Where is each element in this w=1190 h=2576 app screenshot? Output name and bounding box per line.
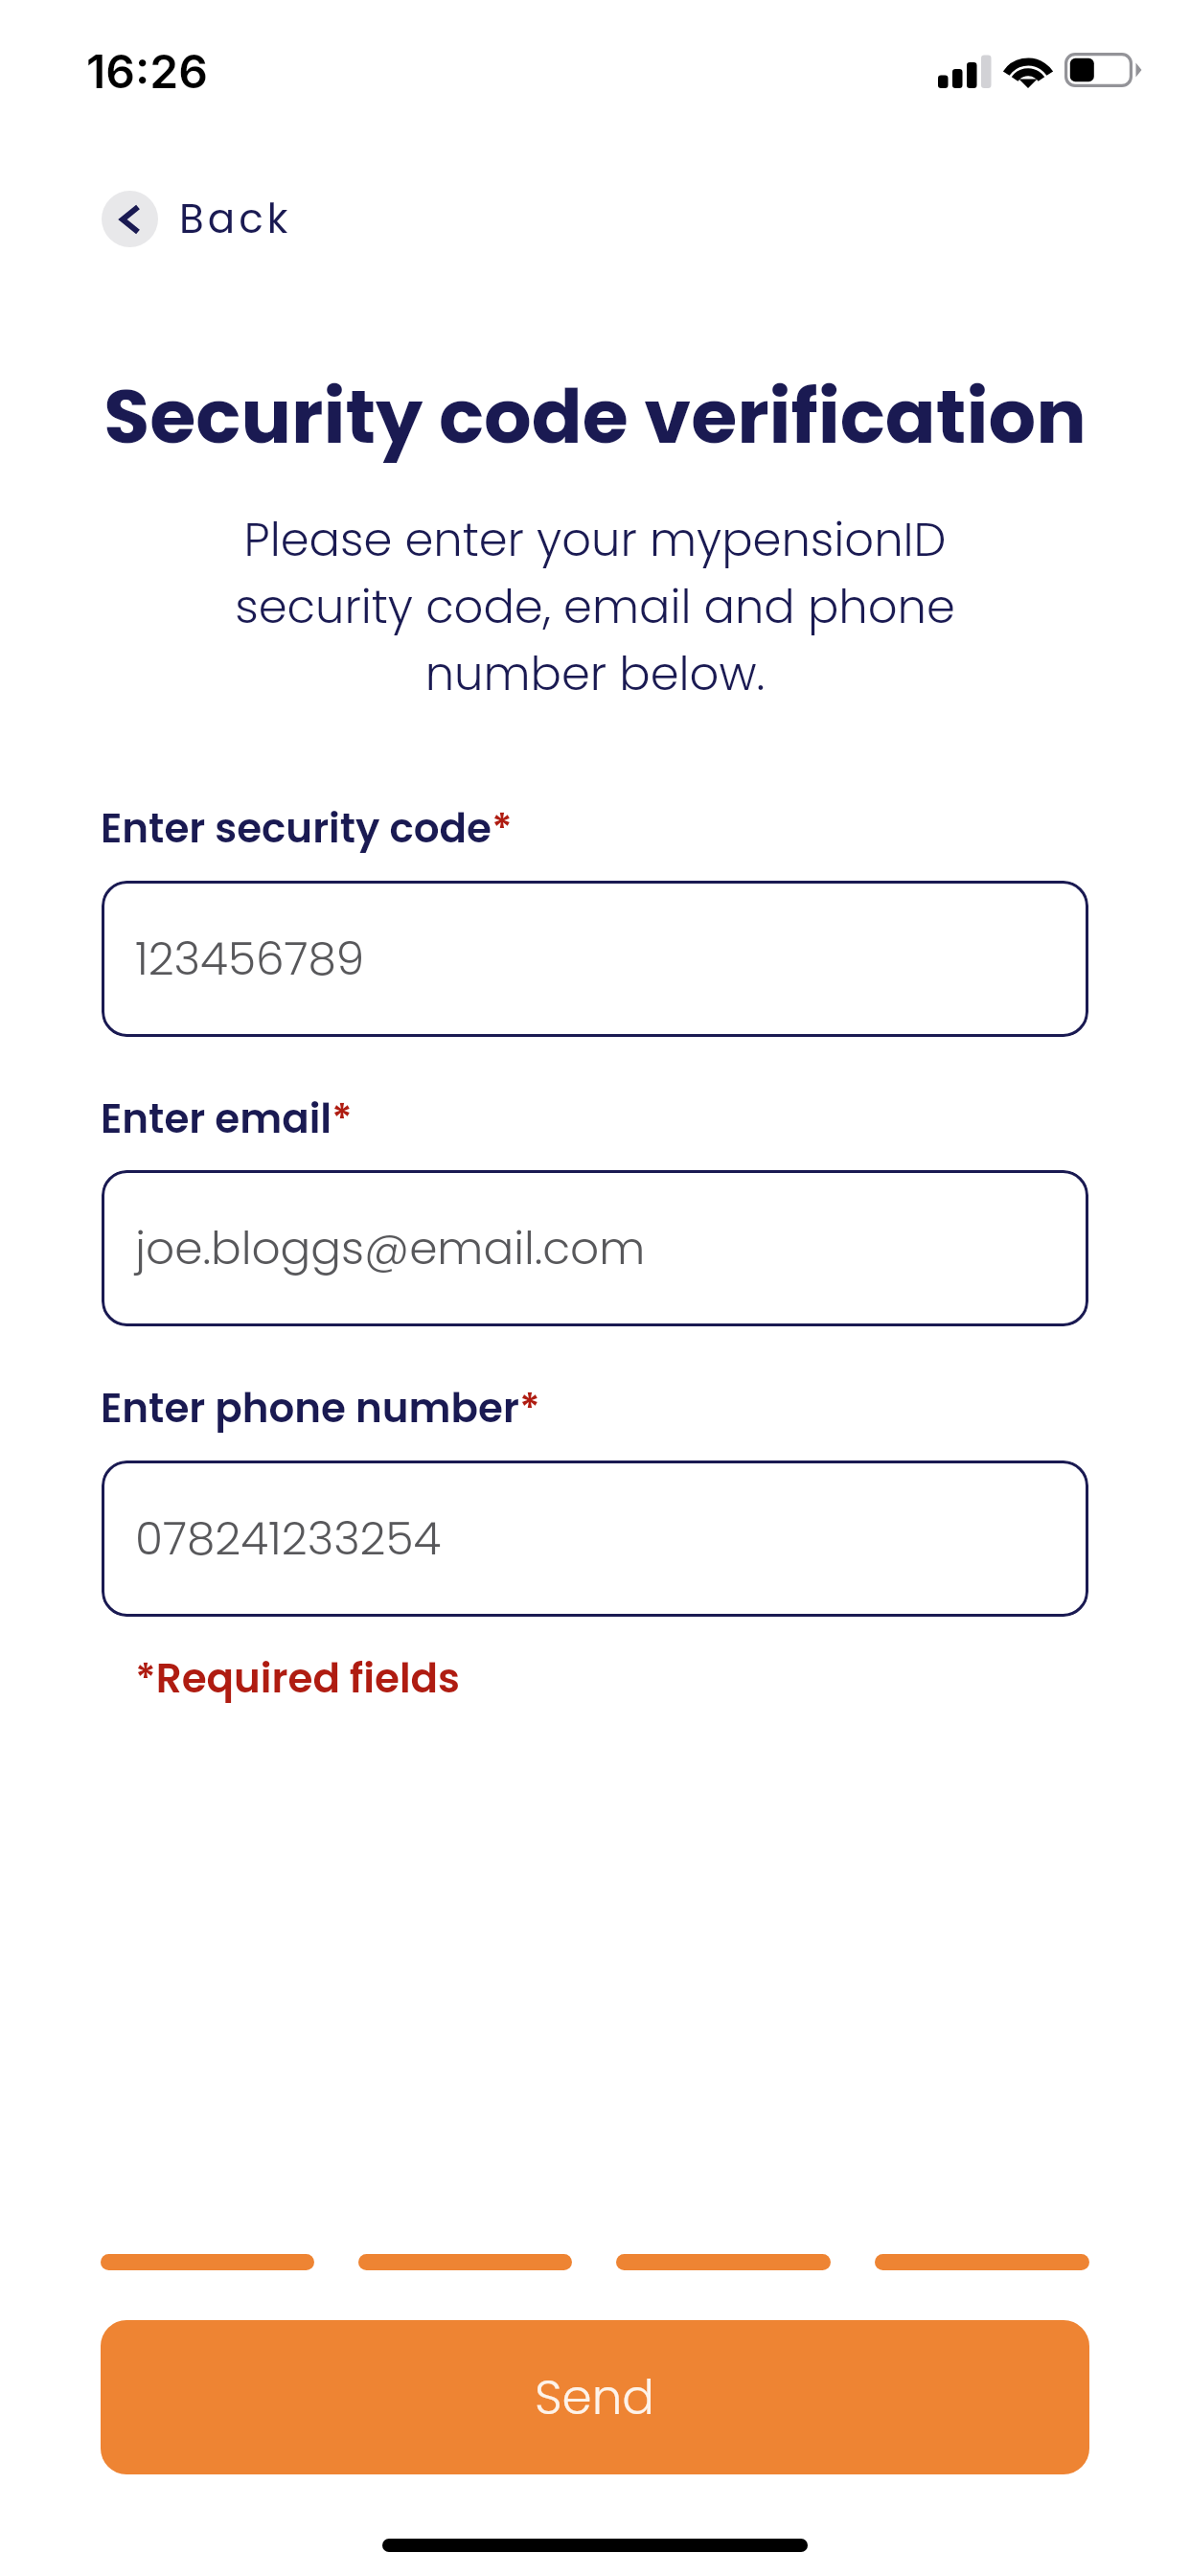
button[interactable]: 078241233254 [102,1460,1088,1617]
staticText: 16:26 [86,43,208,99]
staticText: Security code verification [48,364,1142,469]
staticText: 078241233254 [135,1507,442,1571]
button[interactable]: Back [96,183,304,255]
staticText: joe.bloggs@email.com [135,1217,646,1280]
staticText: Enter security code* [101,800,513,857]
staticText: Back [179,191,292,247]
button[interactable]: Send [101,2320,1089,2474]
other: Wi-Fi [1004,52,1052,89]
staticText: Please enter your mypensionID security c… [213,508,977,706]
button[interactable]: 123456789 [102,881,1088,1037]
staticText: *Required fields [135,1650,460,1707]
button[interactable]: joe.bloggs@email.com [102,1170,1088,1326]
other: Battery [1064,53,1141,89]
staticText: Enter email* [101,1091,353,1147]
other: Back [102,191,158,247]
other: Cellular signal [938,54,993,88]
staticText: Enter phone number* [101,1380,540,1437]
staticText: 123456789 [135,928,365,991]
staticText: Send [535,2364,655,2431]
